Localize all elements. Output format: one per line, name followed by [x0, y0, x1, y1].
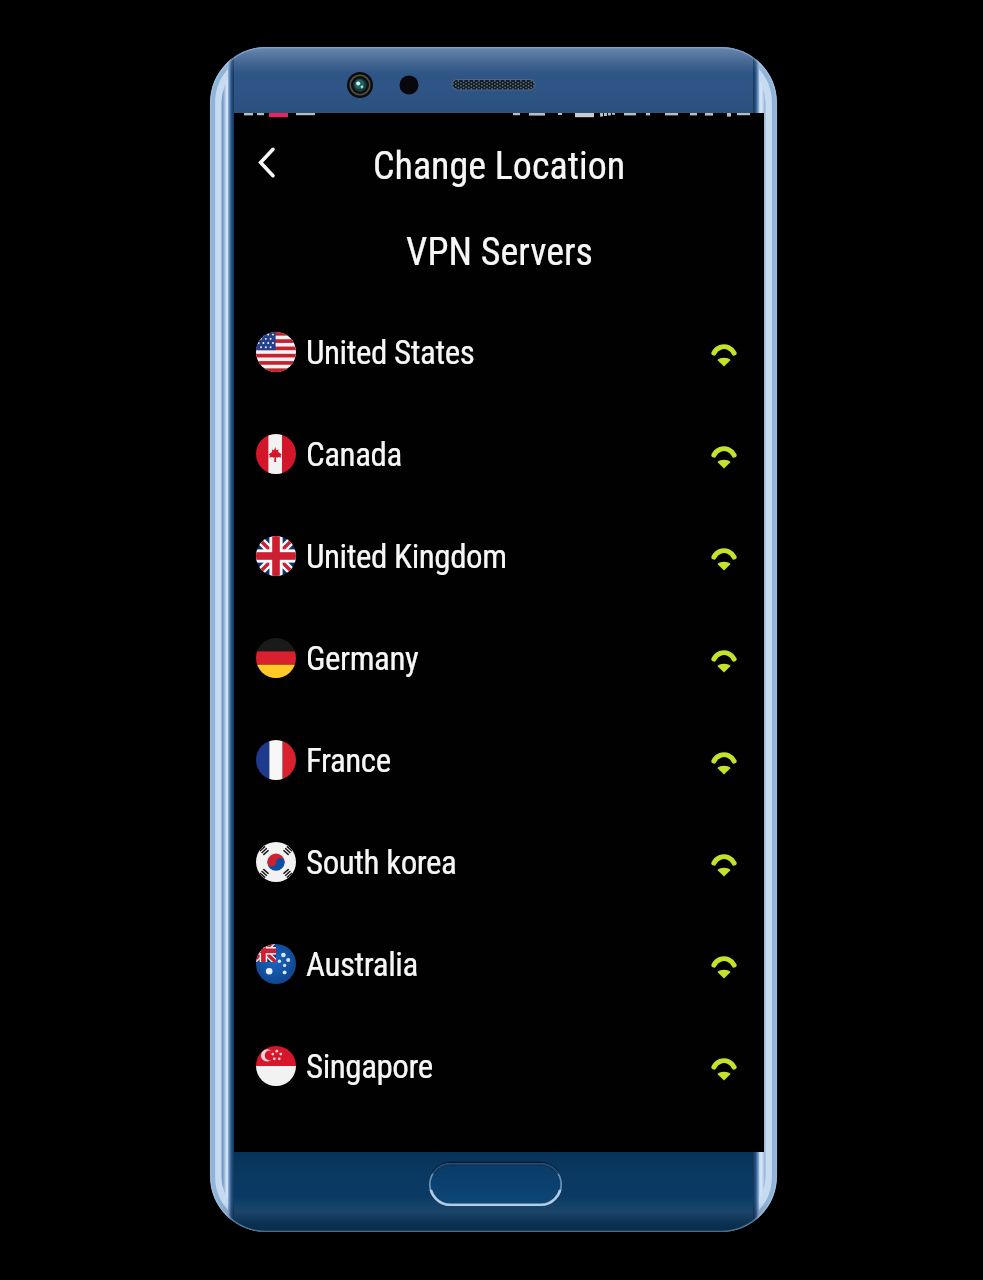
staticText: Canada — [306, 435, 402, 474]
button[interactable]: United States — [234, 301, 764, 403]
staticText: Australia — [306, 945, 418, 984]
button[interactable]: France — [234, 709, 764, 811]
button[interactable]: Australia — [234, 913, 764, 1015]
button[interactable]: Singapore — [234, 1015, 764, 1117]
button[interactable]: United Kingdom — [234, 505, 764, 607]
button[interactable]: Germany — [234, 607, 764, 709]
staticText: France — [306, 741, 391, 780]
staticText: Change Location — [373, 144, 626, 189]
staticText: United Kingdom — [306, 537, 507, 576]
button[interactable]: Back — [242, 142, 290, 190]
button[interactable]: South korea — [234, 811, 764, 913]
staticText: South korea — [306, 843, 457, 882]
staticText: VPN Servers — [406, 230, 593, 275]
button[interactable]: Canada — [234, 403, 764, 505]
staticText: United States — [306, 333, 475, 372]
staticText: Singapore — [306, 1047, 433, 1086]
staticText: Germany — [306, 639, 419, 678]
